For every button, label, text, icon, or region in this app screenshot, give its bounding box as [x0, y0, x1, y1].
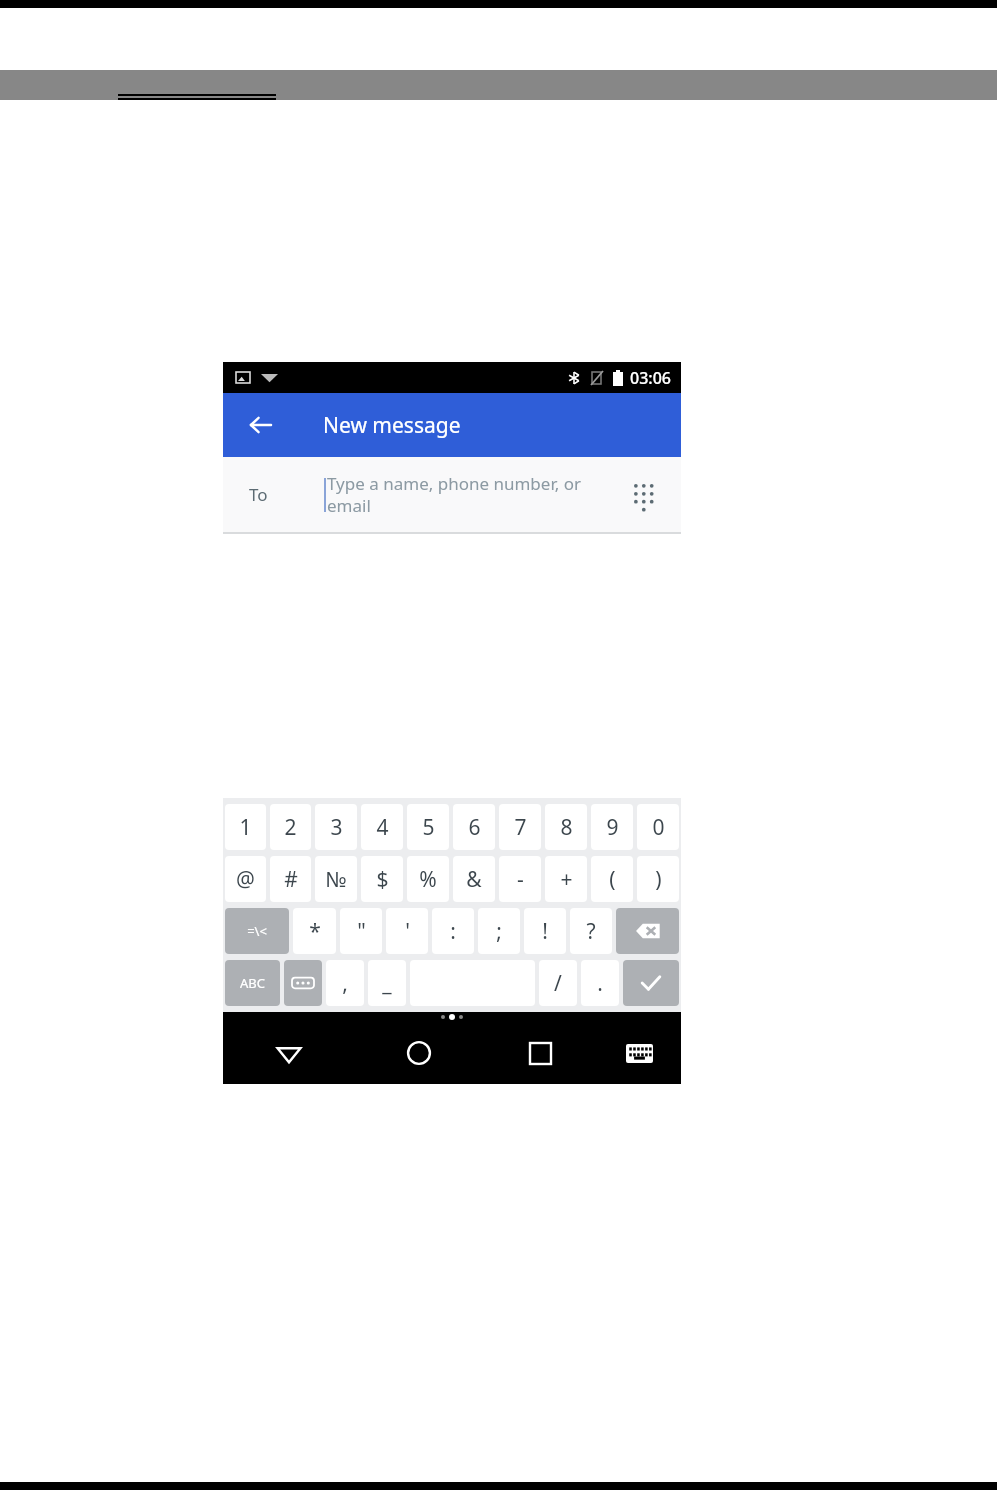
staticText: / — [554, 969, 562, 998]
button[interactable]: _ — [368, 960, 406, 1006]
button[interactable]: / — [539, 960, 577, 1006]
staticText: 7 — [514, 813, 527, 842]
button[interactable]: 6 — [453, 804, 495, 850]
staticText: @ — [236, 865, 255, 894]
staticText: $ — [376, 865, 389, 894]
staticText: # — [284, 865, 298, 894]
staticText: =\< — [247, 922, 267, 940]
staticText: 5 — [422, 813, 435, 842]
staticText: " — [357, 917, 366, 946]
staticText: Type a name, phone number, or email — [327, 472, 581, 517]
button[interactable]: $ — [361, 856, 403, 902]
button[interactable]: . — [581, 960, 619, 1006]
staticText: 1 — [239, 813, 252, 842]
button[interactable]: , — [326, 960, 364, 1006]
button[interactable]: 0 — [637, 804, 679, 850]
staticText: 4 — [376, 813, 389, 842]
button[interactable]: " — [340, 908, 382, 954]
staticText: № — [325, 865, 347, 894]
staticText: ' — [405, 917, 410, 946]
button[interactable] — [616, 908, 679, 954]
button[interactable]: № — [315, 856, 357, 902]
staticText: 2 — [284, 813, 297, 842]
staticText: 8 — [560, 813, 573, 842]
staticText: ; — [496, 917, 502, 946]
button[interactable]: 4 — [361, 804, 403, 850]
button[interactable]: To — [223, 457, 681, 532]
staticText: - — [517, 865, 524, 894]
staticText: 6 — [468, 813, 481, 842]
staticText: 3 — [330, 813, 343, 842]
staticText: _ — [382, 969, 392, 998]
button[interactable]: ; — [478, 908, 520, 954]
button[interactable]: Home — [354, 1022, 484, 1084]
staticText: ? — [586, 917, 596, 946]
button[interactable]: Keyboard — [597, 1022, 681, 1084]
staticText: ! — [542, 917, 548, 946]
button[interactable]: 9 — [591, 804, 633, 850]
button[interactable]: & — [453, 856, 495, 902]
button[interactable]: ABC — [225, 960, 280, 1006]
button[interactable]: ' — [386, 908, 428, 954]
button[interactable]: ( — [591, 856, 633, 902]
staticText: To — [249, 483, 268, 506]
button[interactable]: ) — [637, 856, 679, 902]
staticText: % — [419, 865, 437, 894]
button[interactable]: * — [293, 908, 336, 954]
staticText: 03:06 — [630, 367, 671, 389]
button[interactable]: 2 — [270, 804, 311, 850]
button[interactable]: Recents — [484, 1022, 597, 1084]
staticText: New message — [323, 411, 461, 440]
staticText: ABC — [240, 974, 265, 992]
button[interactable]: # — [270, 856, 311, 902]
button[interactable]: ! — [524, 908, 566, 954]
staticText: * — [309, 917, 321, 946]
staticText: . — [597, 969, 603, 998]
button[interactable]: + — [545, 856, 587, 902]
staticText: 0 — [652, 813, 665, 842]
staticText: + — [560, 865, 573, 894]
staticText: : — [450, 917, 456, 946]
button[interactable]: 1 — [225, 804, 266, 850]
button[interactable]: Back — [223, 1022, 354, 1084]
button[interactable]: - — [499, 856, 541, 902]
button[interactable]: @ — [225, 856, 266, 902]
button[interactable]: ? — [570, 908, 612, 954]
button[interactable]: 5 — [407, 804, 449, 850]
button[interactable]: Dialpad — [623, 473, 667, 517]
staticText: ) — [655, 865, 662, 894]
button[interactable] — [623, 960, 679, 1006]
button[interactable]: Back — [237, 401, 285, 449]
button[interactable]: =\< — [225, 908, 289, 954]
button[interactable]: 8 — [545, 804, 587, 850]
button[interactable]: 7 — [499, 804, 541, 850]
staticText: 9 — [606, 813, 619, 842]
button[interactable] — [284, 960, 322, 1006]
staticText: ( — [609, 865, 616, 894]
button[interactable]: 3 — [315, 804, 357, 850]
staticText: , — [342, 969, 348, 998]
staticText: & — [466, 865, 482, 894]
button[interactable]: : — [432, 908, 474, 954]
button[interactable]: % — [407, 856, 449, 902]
